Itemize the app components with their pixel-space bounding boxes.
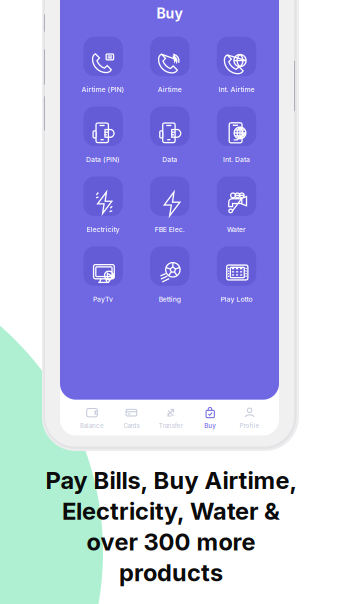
button[interactable]: Airtime — [136, 37, 204, 99]
staticText: Balance — [80, 422, 104, 429]
button[interactable]: Betting — [136, 246, 204, 309]
staticText: Airtime — [158, 85, 182, 94]
button[interactable]: Profile — [230, 400, 269, 434]
staticText: Profile — [240, 422, 260, 429]
staticText: Int. Airtime — [218, 85, 254, 94]
staticText: Electricity, Water & — [62, 497, 280, 525]
button[interactable]: Transfer — [151, 400, 190, 434]
staticText: over 300 more — [86, 528, 255, 556]
staticText: Data (PIN) — [86, 155, 120, 164]
button[interactable]: Data (PIN) — [69, 107, 137, 169]
button[interactable]: FBE Elec. — [136, 176, 204, 239]
button[interactable]: Electricity — [69, 176, 137, 239]
button[interactable]: Water — [203, 176, 270, 239]
staticText: Pay Bills, Buy Airtime, — [45, 466, 296, 495]
button[interactable]: Cards — [112, 400, 151, 434]
button[interactable]: Data — [136, 107, 204, 169]
staticText: Water — [227, 225, 246, 233]
staticText: Electricity — [87, 225, 120, 233]
button[interactable]: Int. Airtime — [203, 37, 270, 99]
staticText: Cards — [123, 422, 139, 429]
staticText: products — [119, 558, 223, 587]
staticText: Transfer — [159, 422, 183, 429]
button[interactable]: Int. Data — [203, 107, 270, 169]
staticText: Data — [162, 155, 177, 164]
staticText: FBE Elec. — [155, 225, 185, 233]
staticText: Betting — [159, 295, 181, 303]
staticText: Int. Data — [223, 155, 250, 164]
button[interactable]: Airtime (PIN) — [69, 37, 137, 99]
button[interactable]: Buy — [99, 4, 239, 22]
button[interactable]: Buy — [190, 400, 230, 434]
staticText: Buy — [156, 5, 182, 22]
staticText: Buy — [204, 422, 216, 429]
staticText: PayTv — [93, 295, 113, 303]
button[interactable]: PayTv — [69, 246, 137, 309]
button[interactable]: Balance — [72, 400, 112, 434]
staticText: Airtime (PIN) — [82, 85, 125, 94]
button[interactable]: Play Lotto — [203, 246, 270, 309]
staticText: Play Lotto — [220, 295, 252, 303]
